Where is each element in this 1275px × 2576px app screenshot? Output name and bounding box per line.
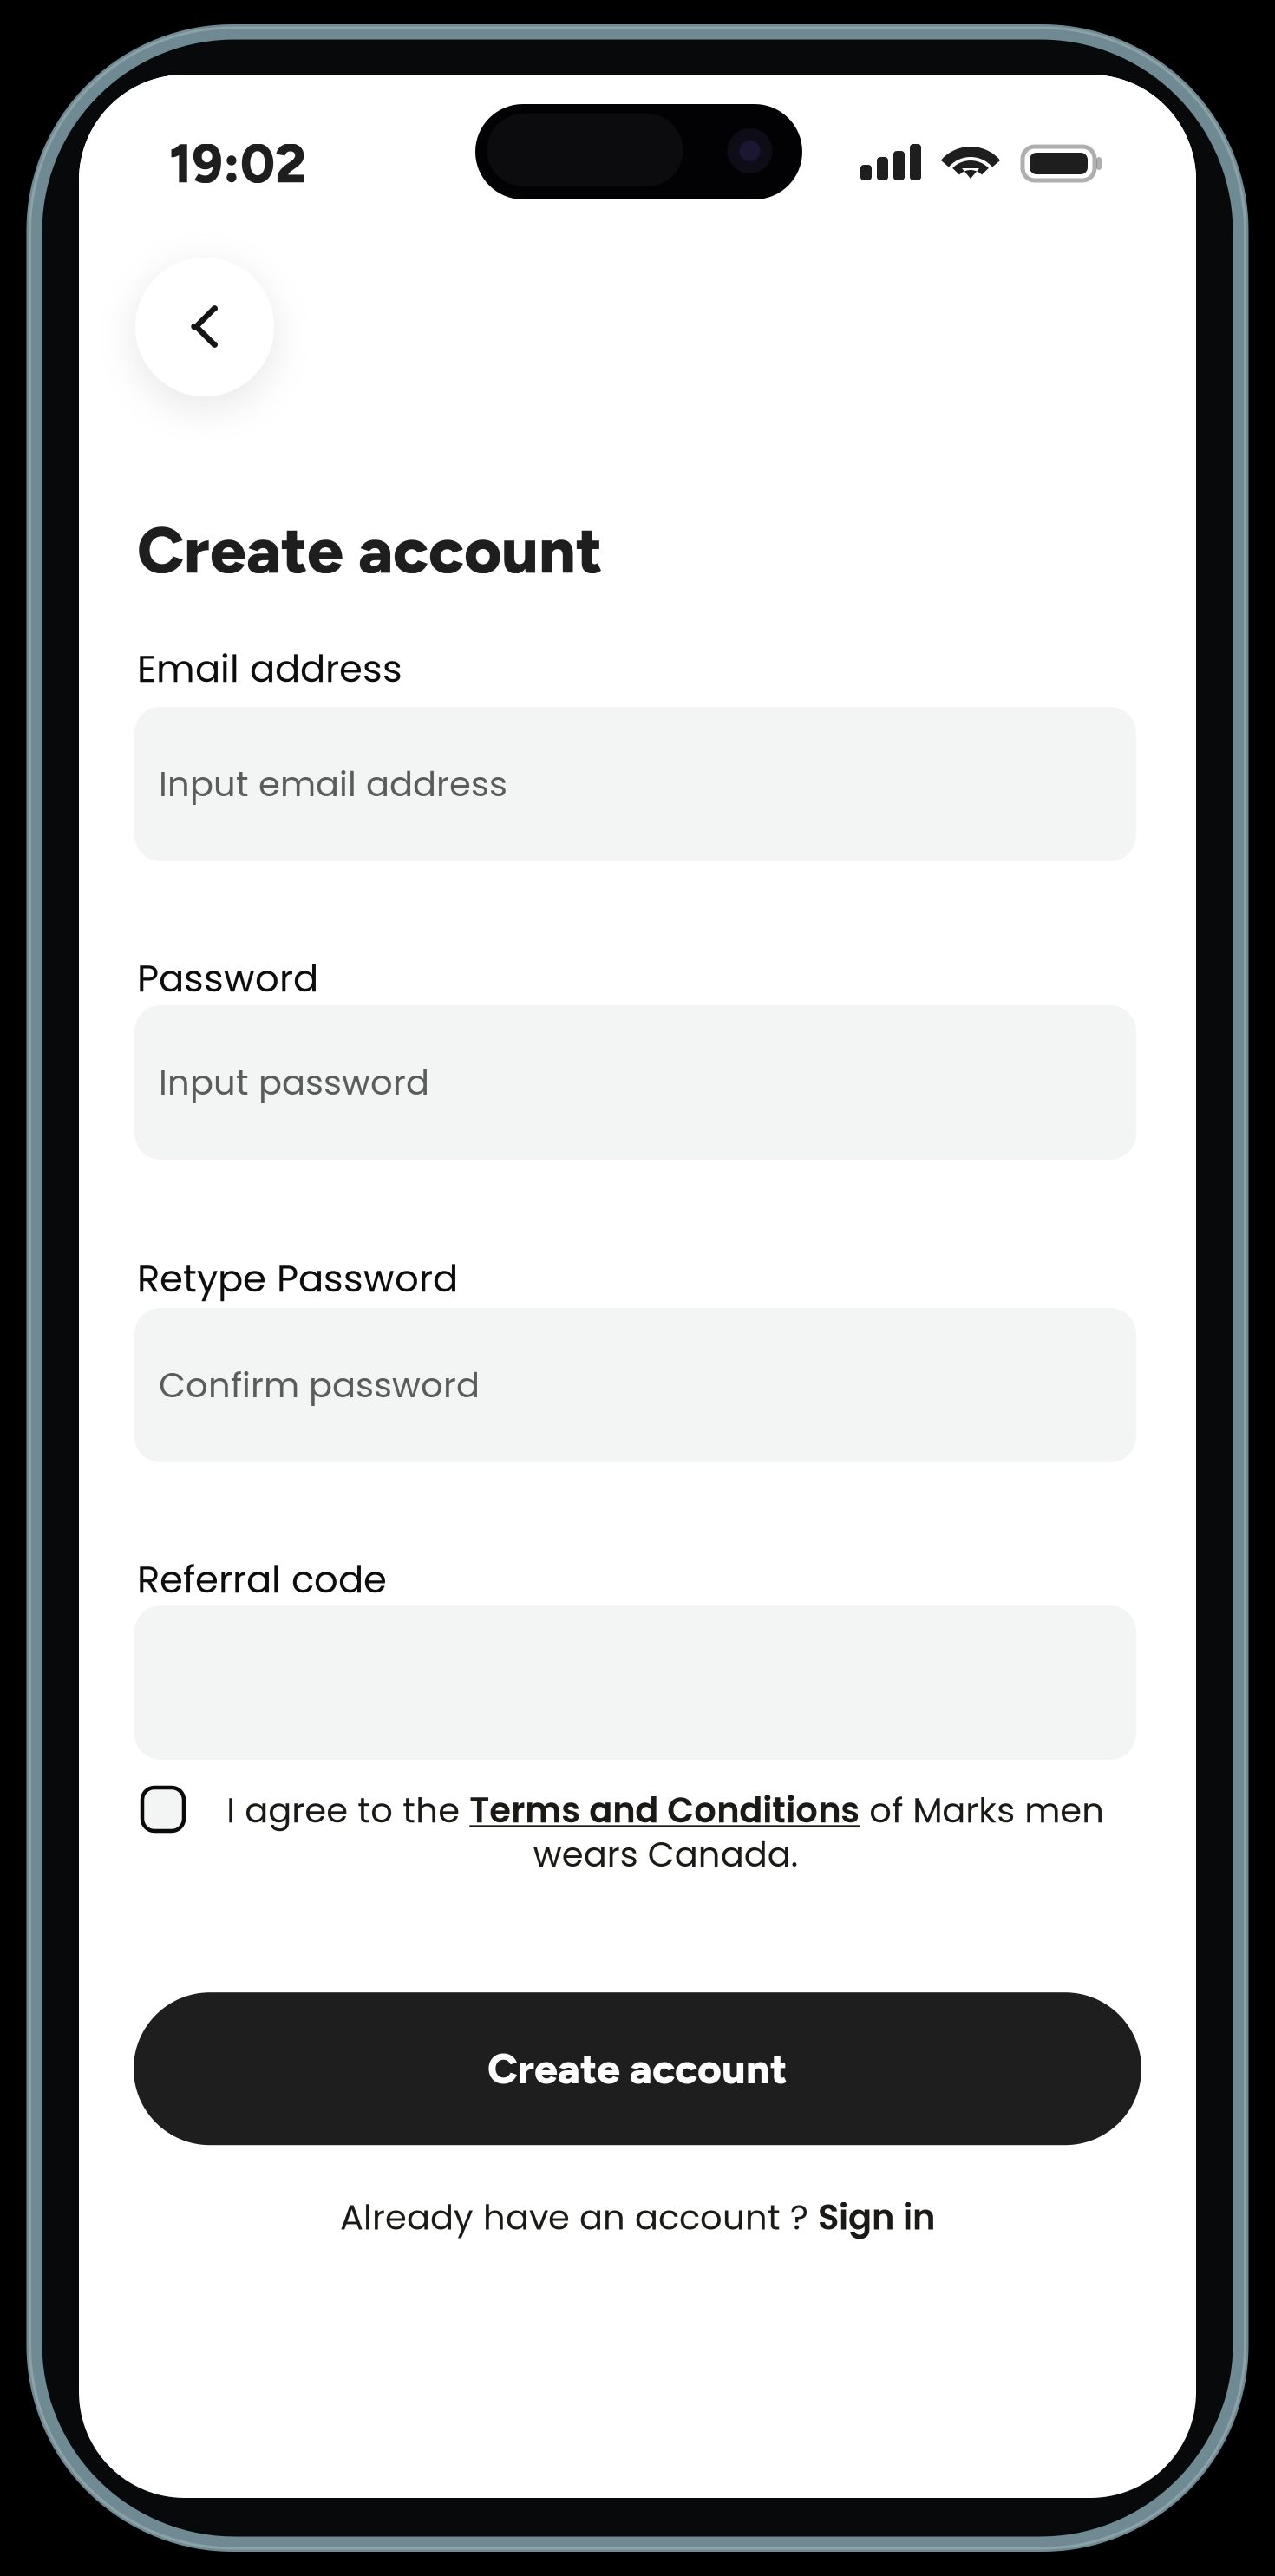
staticText: Email address <box>137 642 402 695</box>
staticText: Referral code <box>137 1553 387 1606</box>
staticText: Already have an account ? Sign in <box>340 2194 935 2241</box>
staticText: Password <box>137 952 318 1005</box>
button[interactable]: Already have an account ? Sign in <box>340 2194 935 2241</box>
staticText: Confirm password <box>159 1361 480 1409</box>
staticText: Retype Password <box>137 1252 458 1305</box>
button[interactable]: Agree to terms and conditions <box>142 1788 184 1831</box>
staticText: Input email address <box>159 760 507 808</box>
staticText: Create account <box>137 511 603 589</box>
button[interactable]: Back <box>135 258 274 396</box>
button[interactable]: Create account <box>134 1992 1141 2145</box>
staticText: Create account <box>487 2044 788 2094</box>
staticText: 19:02 <box>169 132 306 196</box>
button[interactable]: I agree to the Terms and Conditions of M… <box>225 1787 1106 1878</box>
staticText: Input password <box>159 1058 429 1107</box>
staticText: I agree to the Terms and Conditions of M… <box>226 1787 1104 1878</box>
